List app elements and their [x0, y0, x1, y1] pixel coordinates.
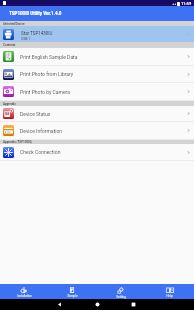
- staticText: USB:1: [21, 37, 31, 41]
- button[interactable]: Print English Sample Data: [0, 48, 194, 65]
- button[interactable]: Device Information: [0, 122, 194, 139]
- button[interactable]: Star TSP143IIIU: [0, 26, 194, 42]
- button[interactable]: Installation: [0, 284, 48, 299]
- staticText: Setting: [116, 295, 126, 299]
- staticText: Appendix (TSP100III): [3, 140, 32, 144]
- button[interactable]: Print Photo from Library: [0, 66, 194, 82]
- staticText: Print Photo by Camera: [20, 89, 70, 95]
- button[interactable]: Setting: [96, 284, 145, 299]
- button[interactable]: Sample: [48, 284, 96, 299]
- staticText: Device Status: [20, 111, 51, 117]
- button[interactable]: Home: [95, 302, 100, 307]
- staticText: Selected Device: [3, 22, 25, 26]
- staticText: 11:59: [181, 1, 192, 6]
- staticText: Contents: [3, 43, 16, 47]
- staticText: TSP100III Utility Ver.1.4.0: [9, 11, 62, 16]
- button[interactable]: Back: [57, 302, 62, 307]
- staticText: Sample: [67, 294, 78, 298]
- button[interactable]: Print Photo by Camera: [0, 83, 194, 100]
- button[interactable]: Check Connection: [0, 144, 194, 160]
- button[interactable]: Help: [145, 284, 194, 299]
- staticText: Installation: [17, 294, 32, 298]
- staticText: Help: [166, 294, 173, 298]
- button[interactable]: Recents: [131, 302, 136, 307]
- staticText: Star TSP143IIIU: [21, 31, 53, 36]
- staticText: Check Connection: [20, 149, 61, 155]
- staticText: Print Photo from Library: [20, 71, 74, 77]
- staticText: Device Information: [20, 128, 63, 134]
- button[interactable]: Device Status: [0, 106, 194, 121]
- staticText: Appendix: [3, 102, 16, 106]
- staticText: Print English Sample Data: [20, 54, 78, 60]
